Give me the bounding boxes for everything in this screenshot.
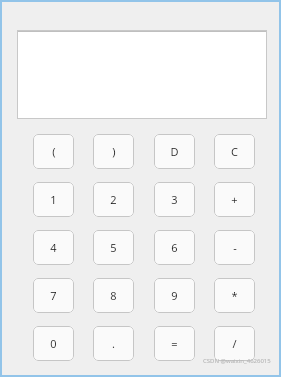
button[interactable]: = — [154, 326, 195, 361]
staticText: 4 — [50, 240, 57, 255]
staticText: 1 — [50, 192, 57, 207]
button[interactable]: D — [154, 134, 195, 169]
button[interactable]: 4 — [33, 230, 74, 265]
button[interactable]: * — [214, 278, 255, 313]
button[interactable]: 8 — [93, 278, 134, 313]
staticText: ) — [112, 144, 116, 159]
button[interactable]: 5 — [93, 230, 134, 265]
staticText: 6 — [171, 240, 178, 255]
button[interactable]: - — [214, 230, 255, 265]
button[interactable]: 0 — [33, 326, 74, 361]
staticText: 5 — [110, 240, 117, 255]
staticText: 0 — [50, 336, 57, 351]
button[interactable]: 9 — [154, 278, 195, 313]
staticText: = — [171, 336, 178, 351]
staticText: 8 — [110, 288, 117, 303]
staticText: / — [232, 336, 237, 351]
button[interactable]: 3 — [154, 182, 195, 217]
staticText: 9 — [171, 288, 178, 303]
staticText: ( — [52, 144, 56, 159]
button[interactable]: C — [214, 134, 255, 169]
staticText: CSDN @waixin_4626015 — [203, 357, 271, 365]
staticText: 3 — [171, 192, 178, 207]
staticText: . — [112, 336, 115, 351]
button[interactable]: . — [93, 326, 134, 361]
button[interactable]: ) — [93, 134, 134, 169]
button[interactable]: 2 — [93, 182, 134, 217]
button[interactable]: + — [214, 182, 255, 217]
button[interactable]: ( — [33, 134, 74, 169]
staticText: + — [231, 192, 238, 207]
button[interactable]: 6 — [154, 230, 195, 265]
staticText: 2 — [110, 192, 117, 207]
staticText: C — [231, 144, 238, 159]
button[interactable]: 7 — [33, 278, 74, 313]
staticText: D — [170, 144, 179, 159]
staticText: - — [233, 240, 237, 255]
staticText: 7 — [50, 288, 57, 303]
button[interactable]: / — [214, 326, 255, 361]
button[interactable]: 1 — [33, 182, 74, 217]
staticText: * — [231, 288, 238, 303]
